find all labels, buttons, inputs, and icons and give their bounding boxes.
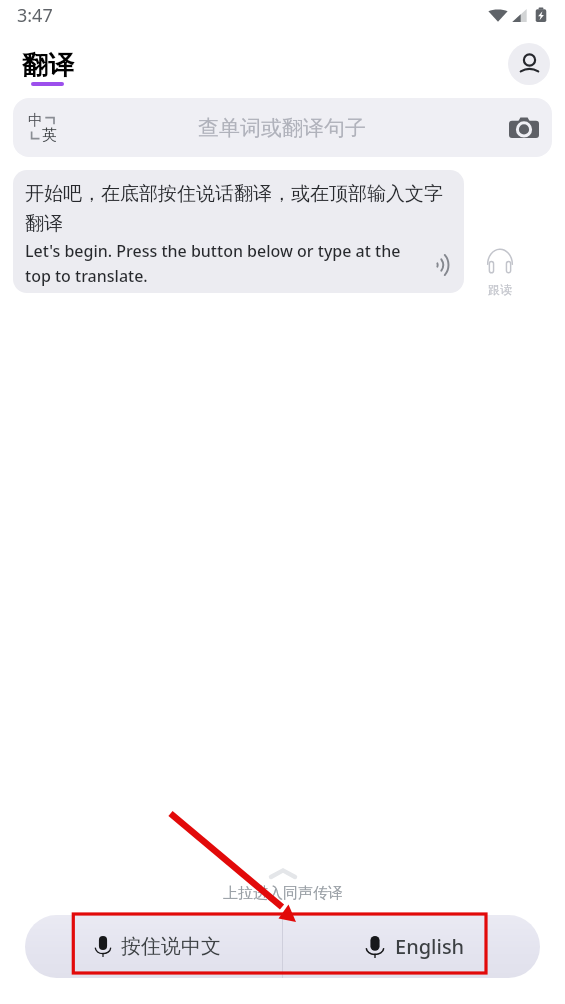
staticText: 开始吧，在底部按住说话翻译，或在顶部输入文字翻译 — [25, 182, 447, 236]
button[interactable]: English — [283, 915, 540, 978]
button[interactable]: Play audio — [426, 249, 458, 281]
staticText: 跟读 — [488, 282, 512, 297]
button[interactable]: 开始吧，在底部按住说话翻译，或在顶部输入文字翻译 — [13, 170, 464, 293]
staticText: Let's begin. Press the button below or t… — [25, 240, 403, 286]
staticText: 上拉进入同声传译 — [223, 884, 343, 903]
staticText: 英 — [42, 126, 57, 145]
staticText: 按住说中文 — [121, 934, 221, 959]
staticText: 翻译 — [22, 49, 74, 82]
staticText: 3:47 — [17, 3, 53, 28]
staticText: 中 — [28, 111, 43, 130]
button[interactable]: Swap languages — [13, 98, 75, 157]
button[interactable]: 跟读 — [472, 243, 527, 293]
button[interactable]: Camera translate — [496, 98, 552, 157]
button[interactable]: 按住说中文 — [25, 915, 282, 978]
staticText: English — [395, 933, 465, 960]
staticText: 查单词或翻译句子 — [198, 115, 366, 141]
button[interactable]: Account — [508, 43, 550, 85]
